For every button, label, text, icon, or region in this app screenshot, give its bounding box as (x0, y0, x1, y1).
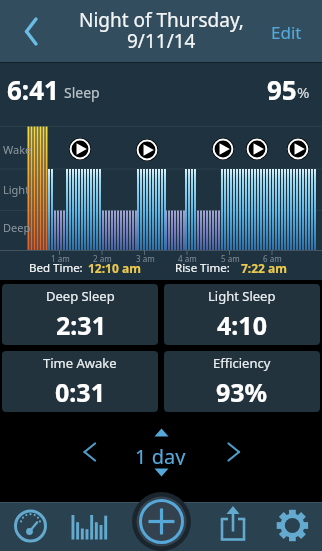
staticText: 6:41 (7, 72, 59, 104)
staticText: Edit (271, 21, 302, 44)
staticText: 2 am (93, 253, 112, 263)
button[interactable]: Edit (258, 16, 314, 48)
button[interactable]: Efficiency (164, 351, 320, 412)
button[interactable]: Light Sleep (164, 284, 320, 345)
staticText: 1 day (135, 443, 186, 465)
staticText: Night of Thursday, (79, 7, 244, 33)
button[interactable] (212, 432, 252, 472)
button[interactable] (208, 504, 258, 549)
staticText: Deep (3, 220, 31, 235)
button[interactable]: Time Awake (2, 351, 158, 412)
button[interactable] (69, 138, 91, 160)
button[interactable] (246, 138, 268, 160)
staticText: 7:22 am (241, 260, 287, 276)
staticText: Light (3, 182, 30, 197)
button[interactable]: 1 day (117, 443, 203, 465)
staticText: 1 am (51, 253, 70, 263)
staticText: Sleep (64, 83, 100, 102)
staticText: Light Sleep (208, 287, 276, 305)
staticText: Efficiency (213, 354, 271, 372)
button[interactable] (266, 504, 318, 549)
staticText: 5 am (221, 253, 240, 263)
staticText: % (297, 82, 310, 102)
staticText: 9/11/14 (127, 28, 196, 54)
button[interactable] (136, 138, 158, 160)
staticText: 95 (267, 72, 297, 104)
staticText: Deep Sleep (46, 287, 115, 305)
button[interactable] (61, 504, 111, 549)
staticText: 12:10 am (88, 260, 141, 276)
button[interactable] (212, 138, 234, 160)
staticText: 4 am (178, 253, 197, 263)
staticText: 3 am (136, 253, 155, 263)
button[interactable] (6, 504, 56, 549)
staticText: Bed Time: (29, 260, 83, 276)
button[interactable] (70, 432, 110, 472)
button[interactable] (287, 138, 309, 160)
staticText: 4:10 (217, 308, 267, 342)
staticText: Wake (3, 142, 32, 157)
staticText: 0:31 (55, 375, 105, 409)
button[interactable] (10, 8, 54, 54)
staticText: 93% (216, 375, 268, 409)
button[interactable] (131, 491, 192, 551)
staticText: Time Awake (43, 354, 117, 372)
button[interactable]: Deep Sleep (2, 284, 158, 345)
staticText: 6 am (263, 253, 282, 263)
staticText: 2:31 (56, 308, 106, 342)
staticText: Rise Time: (175, 260, 230, 276)
